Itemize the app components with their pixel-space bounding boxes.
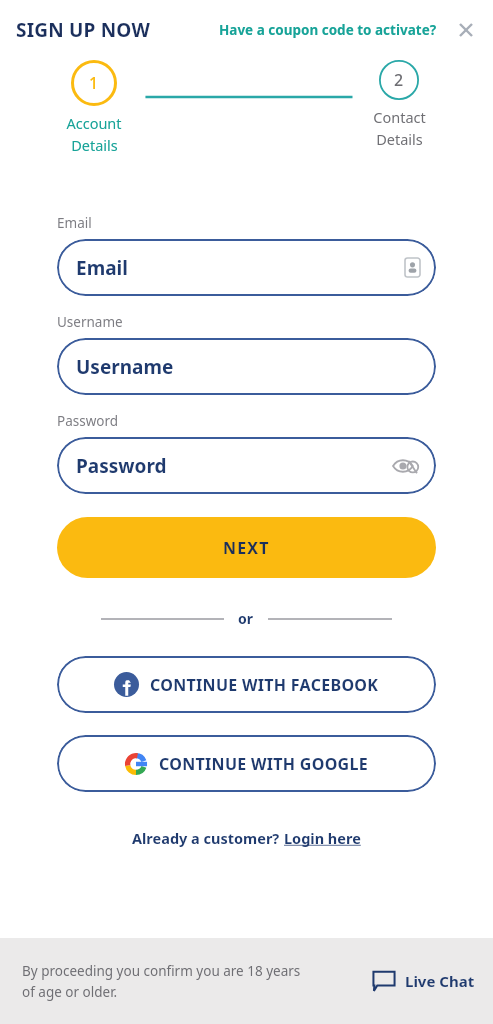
button[interactable]: Live Chat — [372, 970, 475, 992]
button[interactable]: 1 — [46, 60, 142, 155]
staticText: 1 — [89, 72, 99, 94]
staticText: Have a coupon code to activate? — [219, 21, 437, 39]
button[interactable]: CONTINUE WITH FACEBOOK — [57, 656, 436, 713]
button[interactable]: Close — [453, 17, 479, 43]
staticText: 2 — [394, 69, 404, 91]
staticText: Details — [71, 135, 118, 155]
button[interactable]: Username — [57, 338, 436, 395]
staticText: CONTINUE WITH FACEBOOK — [150, 674, 379, 696]
button[interactable]: NEXT — [57, 517, 436, 578]
staticText: Account — [66, 113, 122, 133]
staticText: Details — [376, 129, 423, 149]
button[interactable]: Show password — [390, 451, 420, 481]
staticText: Login here — [284, 828, 361, 848]
button[interactable]: Have a coupon code to activate? — [217, 15, 439, 45]
staticText: Already a customer? — [132, 828, 284, 848]
staticText: Password — [57, 412, 119, 430]
staticText: Username — [57, 313, 123, 331]
staticText: or — [238, 609, 254, 628]
staticText: Email — [76, 255, 128, 281]
button[interactable]: Login here — [284, 828, 361, 848]
staticText: Live Chat — [405, 971, 475, 991]
staticText: CONTINUE WITH GOOGLE — [159, 753, 369, 775]
staticText: Username — [76, 354, 174, 380]
staticText: Email — [57, 214, 92, 232]
button[interactable]: Password — [57, 437, 436, 494]
button[interactable]: Email — [57, 239, 436, 296]
staticText: Contact — [373, 107, 426, 127]
button[interactable]: 2 — [351, 60, 447, 149]
staticText: By proceeding you confirm you are 18 yea… — [22, 962, 301, 1001]
staticText: NEXT — [223, 537, 270, 559]
staticText: Password — [76, 453, 167, 479]
staticText: SIGN UP NOW — [16, 17, 150, 43]
button[interactable]: CONTINUE WITH GOOGLE — [57, 735, 436, 792]
